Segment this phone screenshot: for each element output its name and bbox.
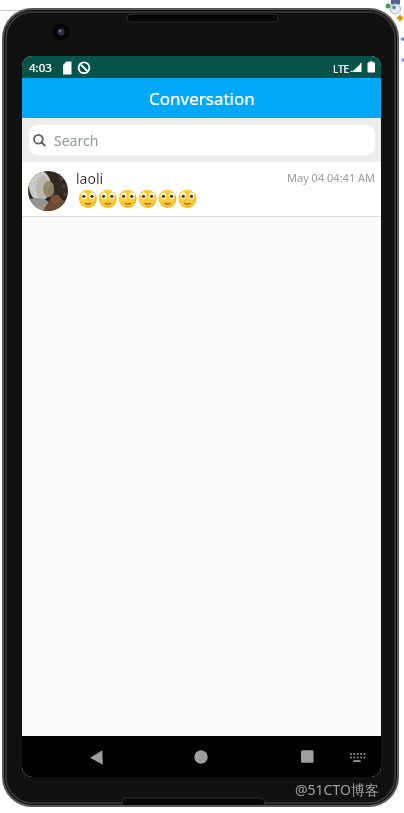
button[interactable] xyxy=(347,736,381,777)
staticText: 4:03 xyxy=(29,60,52,76)
staticText: Search xyxy=(54,131,99,150)
staticText: May 04 04:41 AM xyxy=(287,170,376,185)
button[interactable]: laoli xyxy=(22,162,381,216)
staticText: laoli xyxy=(76,169,104,188)
button[interactable]: Search xyxy=(29,125,375,155)
button[interactable] xyxy=(181,736,221,777)
staticText: LTE xyxy=(333,62,350,76)
button[interactable] xyxy=(287,736,327,777)
staticText: @51CTO博客 xyxy=(295,780,379,799)
staticText: Conversation xyxy=(149,87,255,110)
button[interactable] xyxy=(77,736,117,777)
